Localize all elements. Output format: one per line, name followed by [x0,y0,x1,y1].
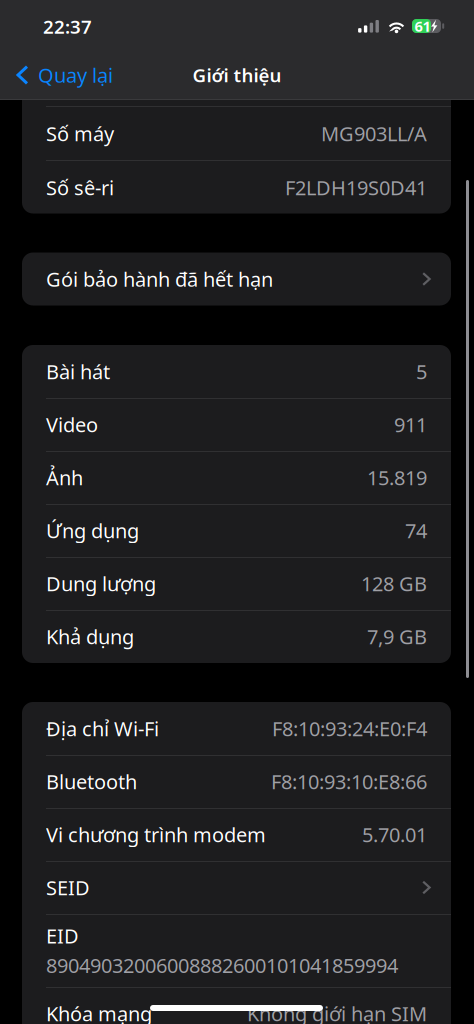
button[interactable]: Số sê-ri [22,161,451,214]
staticText: Ảnh [46,464,83,491]
staticText: 911 [394,411,427,438]
staticText: Khả dụng [46,623,134,650]
staticText: Không giới hạn SIM [247,1000,427,1024]
button[interactable]: Ứng dụng [22,504,451,557]
staticText: 61 [414,16,430,36]
staticText: 5 [416,358,427,385]
staticText: Bài hát [46,358,110,385]
staticText: SEID [46,874,90,901]
staticText: Ứng dụng [46,517,139,544]
staticText: 89049032006008882600101041859994 [46,952,398,979]
button[interactable]: Gói bảo hành đã hết hạn [22,252,451,305]
staticText: Vi chương trình modem [46,821,266,848]
button[interactable]: Địa chỉ Wi-Fi [22,702,451,755]
staticText: Gói bảo hành đã hết hạn [46,266,273,292]
staticText: EID [46,922,79,949]
button[interactable]: Vi chương trình modem [22,808,451,861]
staticText: 22:37 [43,14,92,39]
button[interactable]: SEID [22,861,451,914]
staticText: 128 GB [361,570,427,597]
staticText: Số sê-ri [46,174,114,201]
button[interactable]: Khóa mạng [22,987,451,1024]
staticText: 74 [405,517,427,544]
button[interactable]: Dung lượng [22,557,451,610]
staticText: 15.819 [367,464,427,491]
button[interactable]: Số máy [22,107,451,160]
button[interactable]: Bài hát [22,345,451,398]
staticText: 5.70.01 [362,821,427,848]
button[interactable]: Khả dụng [22,610,451,663]
button[interactable]: Ảnh [22,451,451,504]
staticText: F8:10:93:10:E8:66 [271,768,427,795]
button[interactable]: EID [22,914,451,987]
staticText: Quay lại [38,62,113,88]
button[interactable]: Quay lại [0,53,123,97]
staticText: Giới thiệu [192,63,281,87]
button[interactable]: Bluetooth [22,755,451,808]
staticText: F2LDH19S0D41 [285,174,427,201]
staticText: Địa chỉ Wi-Fi [46,715,159,742]
staticText: Bluetooth [46,768,137,795]
staticText: Số máy [46,120,114,147]
staticText: Dung lượng [46,570,156,597]
staticText: F8:10:93:24:E0:F4 [272,715,427,742]
staticText: 7,9 GB [367,623,427,650]
staticText: Video [46,411,98,438]
staticText: Khóa mạng [46,1000,152,1024]
staticText: MG903LL/A [321,120,427,147]
button[interactable]: Video [22,398,451,451]
